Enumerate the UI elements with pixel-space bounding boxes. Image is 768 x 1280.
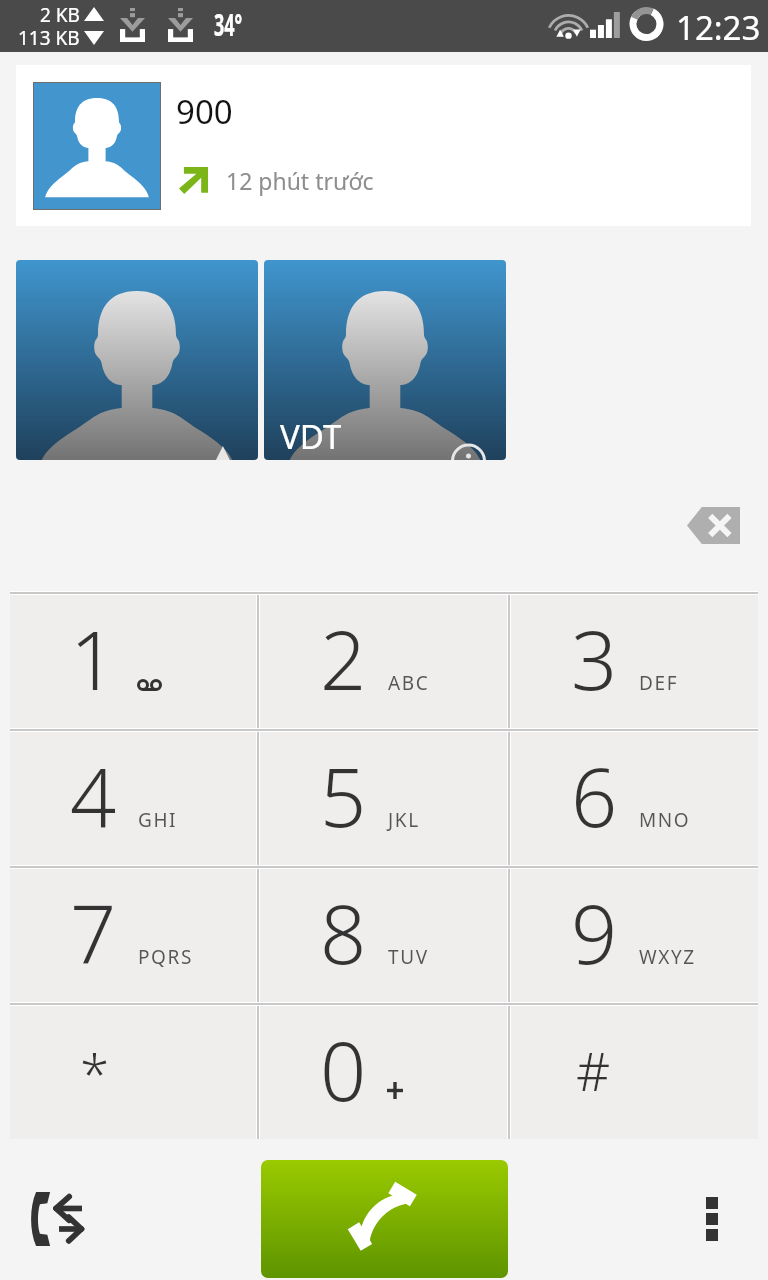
- staticText: 12 phút trước: [226, 165, 374, 196]
- button[interactable]: *: [10, 1006, 256, 1139]
- staticText: JKL: [388, 807, 420, 833]
- staticText: 3: [571, 603, 618, 713]
- button[interactable]: 7: [10, 869, 256, 1002]
- staticText: 6: [571, 740, 618, 850]
- button[interactable]: 6: [511, 732, 758, 865]
- staticText: 900: [176, 89, 233, 134]
- button[interactable]: More options: [664, 1174, 759, 1264]
- staticText: DEF: [639, 670, 679, 696]
- staticText: 0: [320, 1014, 367, 1124]
- staticText: 9: [571, 877, 618, 987]
- staticText: WXYZ: [639, 944, 696, 970]
- button[interactable]: 5: [260, 732, 507, 865]
- staticText: 2 KB: [40, 2, 80, 28]
- button[interactable]: 1: [10, 595, 256, 728]
- staticText: 8: [320, 877, 367, 987]
- staticText: VDT: [280, 414, 342, 459]
- staticText: 113 KB: [18, 25, 80, 51]
- staticText: GHI: [138, 807, 178, 833]
- staticText: ABC: [388, 670, 430, 696]
- button[interactable]: 3: [511, 595, 758, 728]
- staticText: 2: [320, 603, 367, 713]
- button[interactable]: 2: [260, 595, 507, 728]
- button[interactable]: Call log: [10, 1174, 105, 1264]
- button[interactable]: [16, 260, 258, 460]
- staticText: 12:23: [676, 5, 761, 50]
- staticText: *: [80, 1037, 110, 1109]
- staticText: #: [576, 1034, 611, 1106]
- staticText: 34°: [214, 4, 243, 45]
- button[interactable]: 8: [260, 869, 507, 1002]
- button[interactable]: 900: [16, 65, 751, 226]
- staticText: MNO: [639, 807, 691, 833]
- button[interactable]: Backspace: [687, 507, 740, 544]
- staticText: 4: [70, 740, 117, 850]
- staticText: TUV: [388, 944, 429, 970]
- staticText: 1: [70, 603, 117, 713]
- button[interactable]: VDT: [264, 260, 506, 460]
- button[interactable]: 0: [260, 1006, 507, 1139]
- staticText: PQRS: [138, 944, 193, 970]
- staticText: 5: [320, 740, 367, 850]
- button[interactable]: 9: [511, 869, 758, 1002]
- staticText: 7: [70, 877, 117, 987]
- button[interactable]: 4: [10, 732, 256, 865]
- button[interactable]: Call: [261, 1160, 508, 1278]
- button[interactable]: #: [511, 1006, 758, 1139]
